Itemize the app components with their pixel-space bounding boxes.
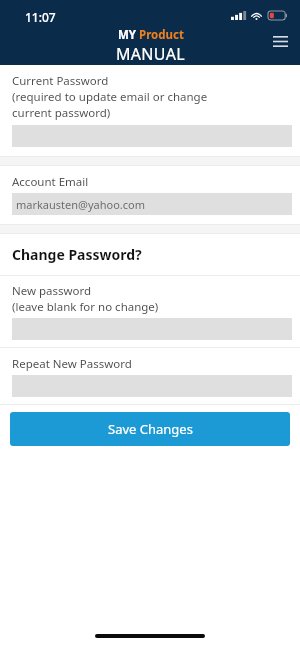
staticText: (required to update email or change (12, 89, 208, 105)
staticText: markausten@yahoo.com (16, 197, 146, 212)
staticText: (leave blank for no change) (12, 299, 159, 315)
staticText: Repeat New Password (12, 356, 132, 372)
staticText: Account Email (12, 174, 89, 190)
staticText: current password) (12, 105, 111, 121)
button[interactable]: Open navigation menu (267, 28, 293, 54)
button[interactable]: Save Changes (10, 412, 290, 446)
staticText: MY Product (118, 27, 184, 43)
staticText: MANUAL (116, 43, 185, 65)
staticText: Save Changes (108, 420, 193, 438)
button[interactable]: MY Product (116, 27, 185, 65)
staticText: Change Password? (12, 245, 142, 264)
button[interactable]: markausten@yahoo.com (12, 193, 292, 215)
staticText: New password (12, 283, 92, 299)
staticText: 11:07 (25, 9, 56, 25)
staticText: Current Password (12, 73, 109, 89)
